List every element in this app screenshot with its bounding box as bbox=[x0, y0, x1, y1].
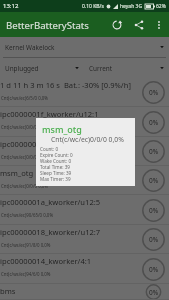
button[interactable]: Current bbox=[84, 58, 169, 78]
staticText: 0% bbox=[149, 235, 159, 244]
staticText: heyah 3G bbox=[120, 3, 143, 10]
staticText: Cnt(c/ws/ec)6/5/0 0,0% bbox=[1, 95, 49, 101]
staticText: 0% bbox=[149, 206, 159, 215]
button[interactable]: Unplugged bbox=[0, 58, 84, 78]
staticText: Expire Count: 0 bbox=[40, 152, 73, 158]
staticText: Wake Count: 0 bbox=[40, 158, 72, 164]
staticText: Cnt(c/ws/ec)90/65/0 0,0% bbox=[1, 212, 54, 218]
staticText: ipc0000001a_kworker/u12:5 bbox=[0, 197, 101, 207]
staticText: msm_otg bbox=[0, 168, 34, 178]
staticText: ipc00000014_kworker/4:1 bbox=[0, 256, 92, 266]
button[interactable]: ipc0000001a_kworker/u12:5 bbox=[0, 195, 169, 225]
button[interactable]: Kernel Wakelock bbox=[0, 37, 169, 57]
staticText: Kernel Wakelock bbox=[5, 43, 55, 52]
staticText: bms bbox=[0, 286, 16, 296]
staticText: 0.10 KB/s bbox=[82, 3, 104, 10]
staticText: ipc00000018_kworker/u12:7 bbox=[0, 227, 101, 237]
staticText: Max Timer: 39 bbox=[40, 176, 71, 182]
staticText: 1 d 11 h 3 m 16 s Bat.: -30% [0.9%/h] bbox=[0, 80, 131, 90]
staticText: 0% bbox=[149, 88, 159, 97]
staticText: Sleep Time: 39 bbox=[40, 170, 72, 176]
button[interactable]: msm_otg bbox=[0, 166, 169, 195]
button[interactable]: ipc00000018_kworker/u12:7 bbox=[0, 225, 169, 254]
staticText: Total Time: 39 bbox=[40, 164, 70, 170]
staticText: BetterBatteryStats bbox=[6, 19, 89, 32]
staticText: Cnt(c/ws/ec)0/0/0 0,0% bbox=[1, 154, 49, 160]
button[interactable]: bms bbox=[0, 284, 169, 300]
staticText: 0% bbox=[149, 176, 159, 185]
staticText: Cnt(c/ws/ec)94/6/0 0,0% bbox=[1, 271, 51, 277]
button[interactable]: 1 d 11 h 3 m 16 s Bat.: -30% [0.9%/h] bbox=[0, 78, 169, 107]
button[interactable]: ipc00000021_kworker/u12:3 bbox=[0, 137, 169, 166]
staticText: 0% bbox=[149, 265, 159, 274]
staticText: Cnt(c/wc/ec)0/0/0 0,0% bbox=[51, 135, 124, 144]
button[interactable]: Share bbox=[128, 12, 150, 37]
staticText: ipc00000021_kworker/u12:3 bbox=[0, 139, 101, 149]
button[interactable]: Refresh bbox=[106, 12, 128, 37]
staticText: msm_otg bbox=[42, 123, 82, 135]
staticText: ipc0000001f_kworker/u12:1 bbox=[0, 109, 99, 119]
staticText: 62% bbox=[156, 3, 166, 10]
button[interactable]: More options bbox=[150, 12, 167, 37]
button[interactable]: ipc0000001f_kworker/u12:1 bbox=[0, 107, 169, 137]
staticText: Current bbox=[89, 64, 112, 73]
button[interactable]: ipc00000014_kworker/4:1 bbox=[0, 254, 169, 284]
staticText: Cnt(c/ws/ec)0/0/0 0,0% bbox=[1, 124, 49, 130]
staticText: Cnt(c/ws/ec)91/8/0 0,0% bbox=[1, 242, 51, 248]
staticText: 13:12 bbox=[3, 2, 19, 10]
staticText: 0% bbox=[149, 288, 159, 297]
staticText: Unplugged bbox=[5, 64, 39, 73]
staticText: Cnt(c/ws/ec)0/0/0 0,0% bbox=[1, 183, 49, 189]
staticText: 0% bbox=[149, 118, 159, 127]
staticText: 0% bbox=[149, 147, 159, 156]
staticText: Count: 0 bbox=[40, 146, 59, 152]
